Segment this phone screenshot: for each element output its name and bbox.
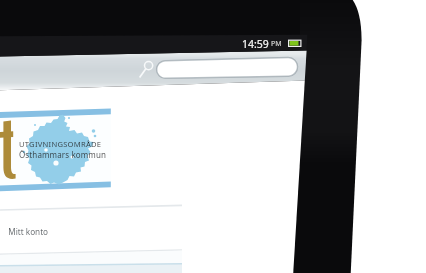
button[interactable]: Tablet showing Osthammars kommun web pag… bbox=[0, 0, 426, 273]
